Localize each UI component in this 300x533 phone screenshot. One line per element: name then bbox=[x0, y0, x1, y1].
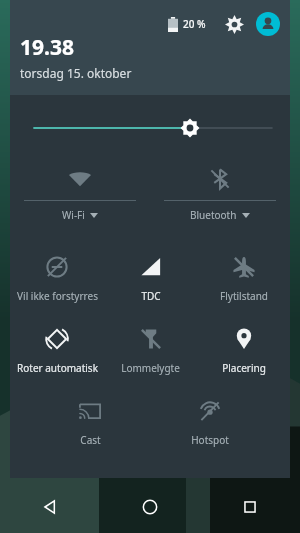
button[interactable]: Lommelygte bbox=[106, 315, 195, 387]
staticText: Hotspot bbox=[191, 433, 229, 447]
button[interactable]: Wi-Fi bbox=[24, 157, 136, 222]
button[interactable]: Back bbox=[0, 480, 100, 533]
staticText: Placering bbox=[222, 361, 266, 375]
staticText: Flytilstand bbox=[220, 289, 268, 303]
staticText: Wi-Fi bbox=[62, 208, 85, 222]
button[interactable]: Settings bbox=[222, 12, 246, 36]
staticText: Vil ikke forstyrres bbox=[17, 289, 98, 303]
staticText: torsdag 15. oktober bbox=[20, 65, 132, 81]
staticText: Roter automatisk bbox=[17, 361, 98, 375]
button[interactable]: Brightness bbox=[10, 117, 290, 139]
staticText: Cast bbox=[80, 433, 101, 447]
button[interactable]: Bluetooth bbox=[164, 157, 276, 222]
button[interactable]: Roter automatisk bbox=[12, 315, 102, 387]
button[interactable]: Flytilstand bbox=[199, 243, 288, 315]
button[interactable]: Home bbox=[100, 480, 200, 533]
button[interactable]: Vil ikke forstyrres bbox=[12, 243, 102, 315]
staticText: TDC bbox=[141, 289, 161, 303]
staticText: Lommelygte bbox=[121, 361, 180, 375]
staticText: 20 % bbox=[183, 17, 206, 31]
button[interactable]: TDC bbox=[106, 243, 195, 315]
button[interactable]: User bbox=[256, 12, 280, 36]
staticText: Bluetooth bbox=[190, 208, 237, 222]
button[interactable]: Hotspot bbox=[152, 387, 268, 459]
button[interactable]: Recents bbox=[200, 480, 300, 533]
button[interactable]: Cast bbox=[32, 387, 148, 459]
staticText: 19.38 bbox=[20, 33, 74, 62]
button[interactable]: Placering bbox=[199, 315, 288, 387]
